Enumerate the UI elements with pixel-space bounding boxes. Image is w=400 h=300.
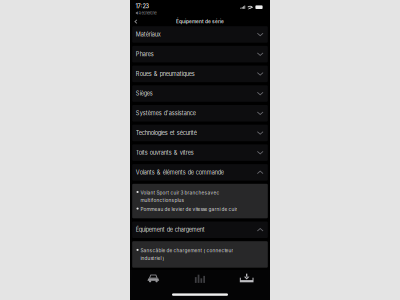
staticText: Sans câble de chargement ( connecteur [140,248,233,253]
staticText: Matériaux [136,31,161,38]
button[interactable]: Technologies et sécurité [132,125,268,141]
staticText: Toits ouvrants & vitres [136,149,194,156]
staticText: Technologies et sécurité [136,130,197,136]
staticText: Volant Sport cuir 3 branches avec [140,190,219,195]
staticText: Équipement de chargement [136,226,205,233]
staticText: Pommeau de levier de vitesse garni de cu… [140,206,237,212]
staticText: Recherche [138,11,156,15]
staticText: 17:23 [135,3,149,10]
button[interactable]: Matériaux [132,26,268,43]
button[interactable]: Roues & pneumatiques [132,66,268,82]
button[interactable]: Retour [130,17,142,26]
staticText: multifonctions plus [140,197,183,203]
button[interactable]: Volants & éléments de commande [132,164,268,181]
staticText: Volants & éléments de commande [136,169,224,176]
button[interactable]: Sièges [132,85,268,102]
button[interactable]: Toits ouvrants & vitres [132,144,268,161]
staticText: Roues & pneumatiques [136,70,195,77]
button[interactable]: Phares [132,46,268,62]
staticText: industriel ) [140,255,164,261]
button[interactable]: Comparer [177,270,223,287]
button[interactable]: Téléchargements [223,270,270,287]
staticText: Phares [136,51,154,58]
staticText: Sièges [136,90,153,97]
button[interactable]: Systèmes d'assistance [132,105,268,121]
staticText: Équipement de série [176,19,224,24]
button[interactable]: Équipement de chargement [132,221,268,238]
button[interactable]: Véhicule [130,270,177,287]
staticText: Systèmes d'assistance [136,110,196,117]
